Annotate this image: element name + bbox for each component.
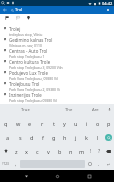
button[interactable]: Trolej — [0, 26, 114, 37]
staticText: a — [6, 134, 10, 141]
staticText: k — [85, 134, 88, 141]
button[interactable]: Inzinerijos Trole — [0, 92, 114, 103]
button[interactable]: f — [37, 130, 48, 144]
staticText: The — [65, 107, 73, 113]
staticText: f — [42, 134, 44, 141]
staticText: Centro kultura Trole — [9, 59, 51, 65]
button[interactable]: n — [65, 144, 76, 158]
button[interactable]: s — [14, 130, 26, 144]
staticText: q — [4, 120, 8, 127]
button[interactable]: , — [11, 158, 20, 170]
staticText: c — [36, 148, 39, 155]
button[interactable]: k — [81, 130, 92, 144]
staticText: o — [96, 120, 100, 127]
button[interactable]: Newline — [103, 158, 114, 170]
staticText: t — [53, 120, 55, 127]
button[interactable]: y — [59, 116, 70, 130]
button[interactable]: a — [2, 130, 14, 144]
staticText: m — [79, 148, 85, 155]
staticText: p — [107, 120, 111, 127]
button[interactable]: o — [92, 116, 103, 130]
button[interactable]: Podujevo Lux Trole — [0, 70, 114, 81]
staticText: . — [98, 161, 100, 168]
staticText: b — [58, 148, 62, 155]
staticText: n — [69, 148, 73, 155]
button[interactable]: ! — [87, 144, 95, 158]
button[interactable]: Recent — [12, 14, 23, 21]
staticText: True — [21, 107, 30, 113]
button[interactable]: Centro kultura Trole — [0, 59, 114, 70]
button[interactable]: Centras - Auto Trol — [0, 48, 114, 59]
button[interactable]: Back — [0, 6, 9, 14]
button[interactable]: More options — [104, 104, 114, 115]
button[interactable]: Home — [51, 170, 63, 182]
button[interactable]: e — [24, 116, 36, 130]
button[interactable]: j — [70, 130, 81, 144]
button[interactable]: h — [59, 130, 70, 144]
staticText: h — [63, 134, 67, 141]
staticText: Park Vara Trolejbusu, 09380 Vil — [9, 76, 58, 81]
button[interactable]: Voice search — [102, 6, 114, 14]
button[interactable]: Back — [20, 170, 32, 182]
staticText: g — [52, 134, 56, 141]
staticText: Trolejbusu Trol — [9, 81, 40, 87]
button[interactable]: b — [54, 144, 65, 158]
button[interactable]: The — [50, 104, 87, 115]
button[interactable]: q — [0, 116, 12, 130]
button[interactable]: v — [43, 144, 54, 158]
staticText: d — [30, 134, 34, 141]
staticText: ! — [90, 148, 92, 155]
staticText: Vilniaus m. sav, 0110 — [9, 43, 42, 48]
button[interactable]: Report — [1, 14, 12, 21]
staticText: ?123 — [2, 162, 9, 166]
button[interactable]: i — [81, 116, 92, 130]
staticText: y — [63, 120, 66, 127]
button[interactable]: Recents — [83, 170, 95, 182]
staticText: Gedimino kalnas Trol — [9, 37, 53, 43]
button[interactable]: ? — [95, 144, 103, 158]
staticText: e — [28, 120, 32, 127]
button[interactable]: Search — [103, 130, 114, 144]
button[interactable]: Emoji — [85, 158, 94, 170]
button[interactable]: p — [103, 116, 114, 130]
staticText: Centras - Auto Trol — [9, 48, 48, 54]
button[interactable]: d — [26, 130, 37, 144]
button[interactable]: g — [48, 130, 59, 144]
button[interactable]: Trolejbusu Trol — [0, 81, 114, 92]
staticText: s — [19, 134, 22, 141]
staticText: j — [75, 134, 77, 141]
button[interactable]: m — [76, 144, 87, 158]
staticText: r — [41, 120, 44, 127]
staticText: z — [15, 148, 18, 155]
staticText: troleybus stop, Vilniu — [9, 32, 43, 37]
button[interactable]: w — [12, 116, 24, 130]
staticText: Podujevo Lux Trole — [9, 70, 48, 76]
staticText: , — [15, 161, 17, 168]
button[interactable]: u — [70, 116, 81, 130]
button[interactable]: Backspace — [103, 144, 114, 158]
button[interactable]: Symbols — [0, 158, 11, 170]
staticText: x — [25, 148, 28, 155]
button[interactable]: t — [48, 116, 59, 130]
button[interactable]: x — [21, 144, 32, 158]
button[interactable]: r — [36, 116, 48, 130]
staticText: ? — [98, 148, 101, 155]
button[interactable]: Place — [23, 14, 34, 21]
button[interactable]: True — [0, 104, 50, 115]
button[interactable]: Shift — [0, 144, 11, 158]
button[interactable]: Gedimino kalnas Trol — [0, 37, 114, 48]
staticText: Park stop Trolejbusu 09380 Vil — [9, 98, 57, 103]
staticText: l — [97, 134, 99, 141]
staticText: Park stop Trolejbusu 1 — [9, 54, 45, 59]
staticText: Trolej — [9, 26, 21, 32]
staticText: Trol — [15, 7, 23, 13]
button[interactable]: Are — [87, 104, 104, 115]
button[interactable]: l — [92, 130, 103, 144]
staticText: Park Vara Trolejbusu 2, 09380 Vi — [9, 87, 60, 92]
button[interactable]: z — [11, 144, 21, 158]
button[interactable]: . — [94, 158, 103, 170]
button[interactable]: c — [32, 144, 43, 158]
staticText: Are — [92, 107, 99, 113]
staticText: 04:42 — [102, 1, 113, 6]
